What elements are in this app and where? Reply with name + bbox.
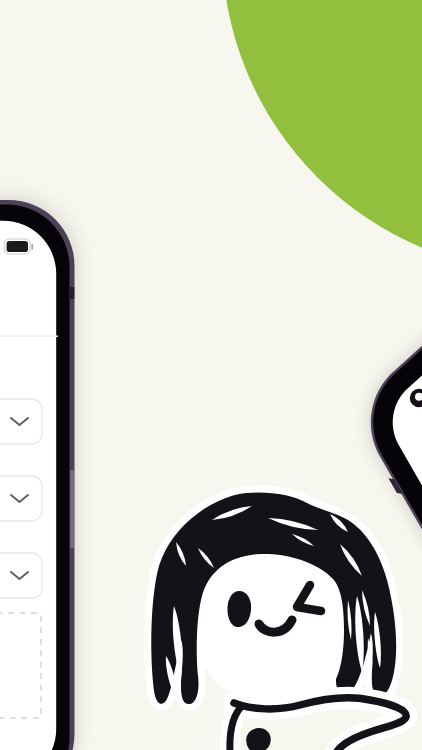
other: Promo illustration bbox=[0, 0, 422, 750]
